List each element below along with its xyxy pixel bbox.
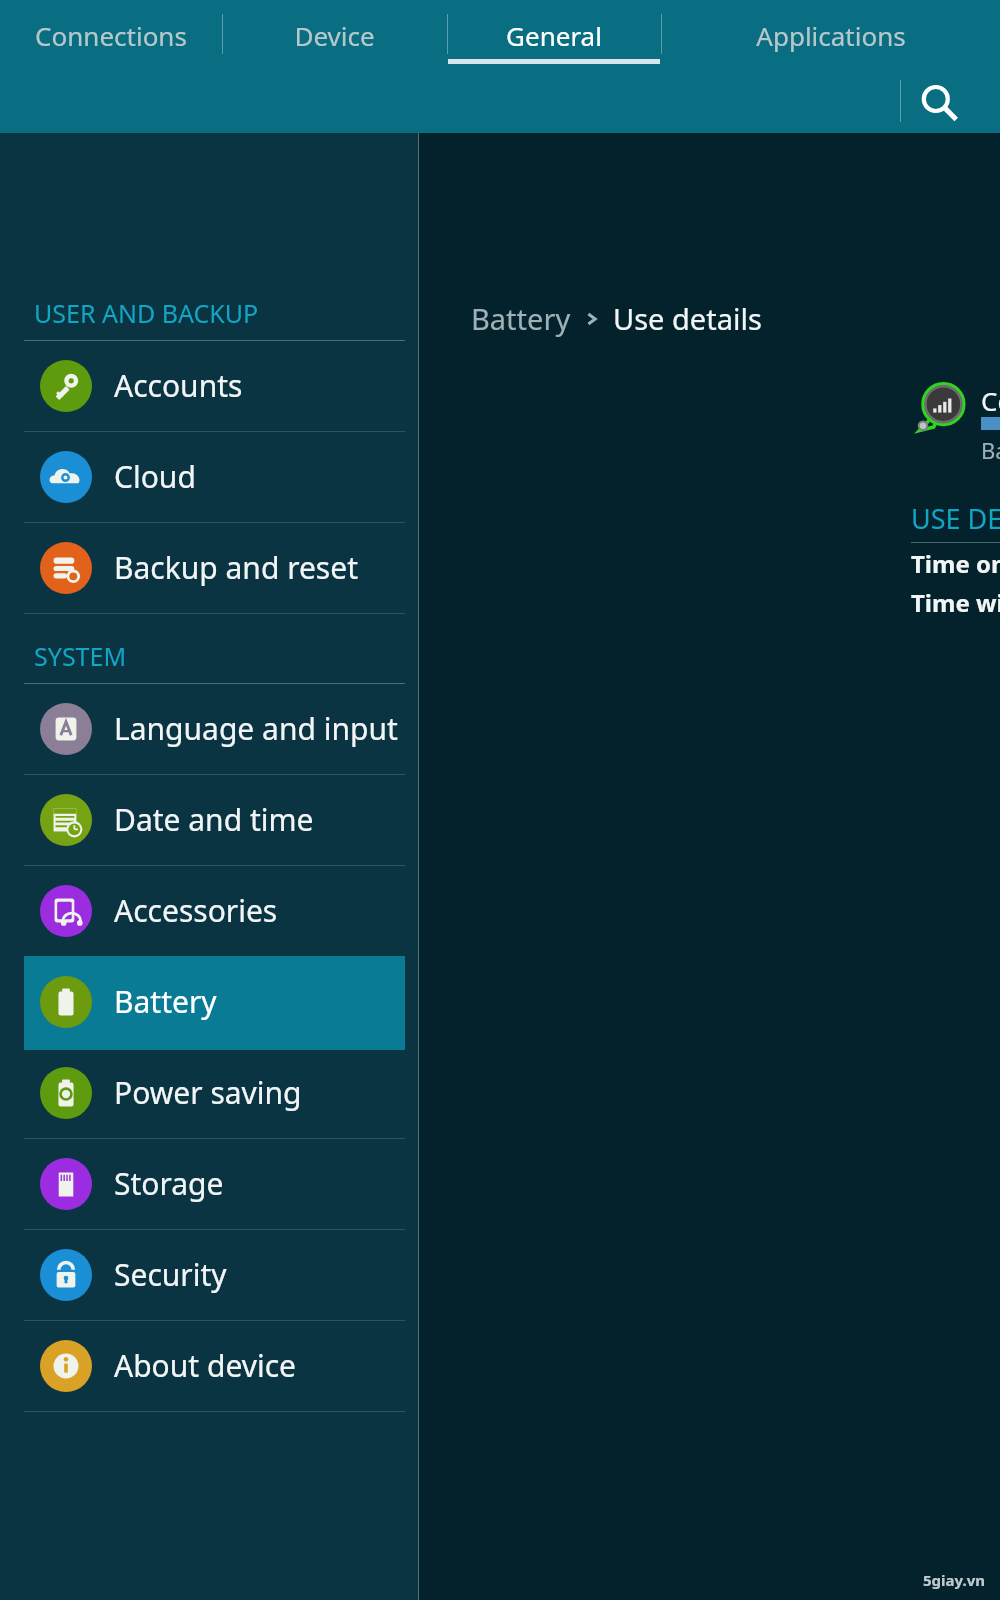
staticText: SYSTEM: [34, 639, 127, 673]
staticText: Connections: [35, 18, 187, 53]
staticText: Cloud: [114, 456, 196, 497]
staticText: USE DETAILS: [911, 500, 1000, 537]
staticText: Use details: [613, 299, 762, 338]
staticText: Storage: [114, 1163, 224, 1204]
staticText: Battery: [114, 981, 217, 1022]
button[interactable]: General: [447, 0, 661, 70]
staticText: Cell standby: [981, 383, 1000, 418]
staticText: General: [506, 18, 602, 53]
button[interactable]: Time on: [911, 544, 1000, 582]
staticText: Date and time: [114, 799, 314, 840]
button[interactable]: Time without signal: [911, 583, 1000, 621]
staticText: Time on: [911, 547, 1000, 580]
button[interactable]: Battery: [471, 299, 762, 338]
staticText: 5giay.vn: [923, 1570, 986, 1590]
button[interactable]: Applications: [661, 0, 1000, 70]
button[interactable]: Accounts: [24, 340, 405, 431]
button[interactable]: Search: [908, 72, 970, 134]
button[interactable]: Security: [24, 1229, 405, 1320]
staticText: Accounts: [114, 365, 243, 406]
staticText: Language and input: [114, 708, 398, 749]
button[interactable]: About device: [24, 1320, 405, 1411]
staticText: Backup and reset: [114, 547, 358, 588]
staticText: Power saving: [114, 1072, 302, 1113]
staticText: Battery used by cell radio: [981, 435, 1000, 465]
staticText: USER AND BACKUP: [34, 296, 259, 330]
button[interactable]: Battery: [24, 956, 405, 1047]
button[interactable]: Language and input: [24, 683, 405, 774]
staticText: Applications: [756, 18, 906, 53]
button[interactable]: Cloud: [24, 431, 405, 522]
button[interactable]: Backup and reset: [24, 522, 405, 613]
staticText: Security: [114, 1254, 227, 1295]
button[interactable]: Power saving: [24, 1047, 405, 1138]
button[interactable]: Device: [222, 0, 447, 70]
button[interactable]: Storage: [24, 1138, 405, 1229]
staticText: Device: [294, 18, 375, 53]
button[interactable]: Connections: [0, 0, 222, 70]
button[interactable]: Date and time: [24, 774, 405, 865]
button[interactable]: Accessories: [24, 865, 405, 956]
staticText: Accessories: [114, 890, 278, 931]
staticText: Time without signal: [911, 586, 1000, 619]
staticText: About device: [114, 1345, 297, 1386]
staticText: Battery: [471, 299, 571, 338]
button[interactable]: [24, 956, 405, 1050]
